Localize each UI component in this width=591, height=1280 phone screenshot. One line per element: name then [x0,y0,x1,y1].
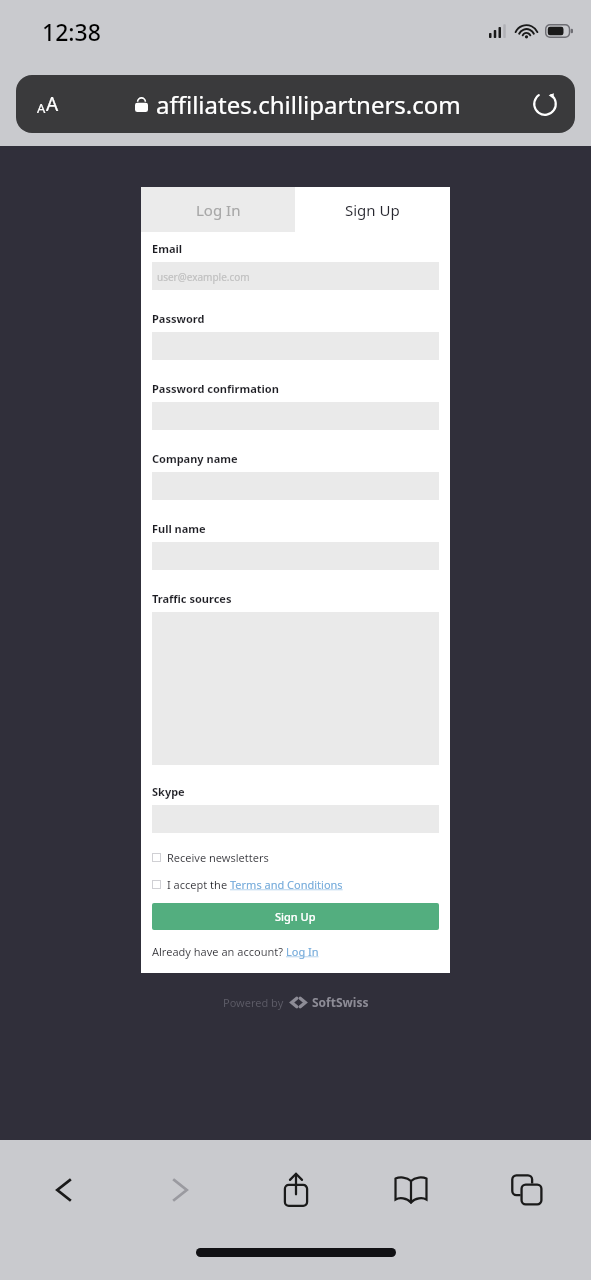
staticText: Powered by [223,995,284,1010]
staticText: A [37,99,46,117]
staticText: Company name [152,451,238,466]
button[interactable]: Sign Up [152,903,439,930]
staticText: Log In [196,200,241,220]
button[interactable]: Sign Up [295,187,450,232]
button[interactable]: user@example.com [152,262,439,290]
button[interactable]: Back [26,1152,102,1228]
staticText: Traffic sources [152,591,232,606]
button[interactable]: Receive newsletters [152,850,439,865]
button[interactable]: Log In [286,944,319,959]
button[interactable]: Share [258,1152,334,1228]
button[interactable]: Forward [142,1152,218,1228]
staticText: affiliates.chillipartners.com [156,88,461,121]
button[interactable]: Bookmarks [373,1152,449,1228]
staticText: A [46,91,59,117]
button[interactable]: Log In [141,187,295,232]
staticText: Email [152,241,183,256]
staticText: Password confirmation [152,381,279,396]
staticText: Skype [152,784,185,799]
staticText: I accept the [167,877,230,892]
staticText: 12:38 [42,16,101,47]
staticText: Already have an account? [152,944,286,959]
staticText: Sign Up [345,200,400,220]
button[interactable]: I accept the [152,877,439,892]
button[interactable]: affiliates.chillipartners.com [80,75,515,133]
staticText: Password [152,311,205,326]
staticText: Sign Up [275,909,316,924]
button[interactable]: Terms and Conditions [230,877,343,892]
staticText: Full name [152,521,206,536]
button[interactable]: Text size options [16,75,80,133]
staticText: SoftSwiss [312,994,369,1010]
button[interactable]: Tabs [489,1152,565,1228]
staticText: user@example.com [157,270,250,284]
button[interactable]: Reload page [515,75,575,133]
staticText: Receive newsletters [167,850,269,865]
